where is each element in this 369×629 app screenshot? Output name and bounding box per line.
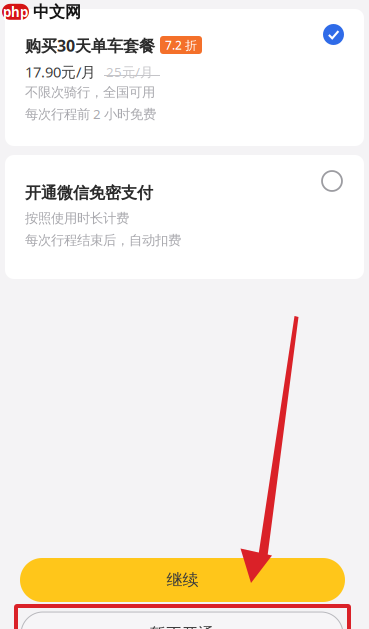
staticText: 继续 (166, 570, 198, 590)
staticText: 每次行程结束后，自动扣费 (25, 232, 181, 248)
staticText: 暂不开通 (150, 624, 214, 629)
staticText: 开通微信免密支付 (25, 183, 153, 203)
staticText: 17.90元/月 (25, 62, 96, 81)
staticText: 每次行程前 2 小时免费 (25, 105, 156, 123)
button[interactable]: 暂不开通 (21, 612, 343, 629)
staticText: 购买30天单车套餐 (25, 35, 155, 56)
button[interactable]: 继续 (20, 558, 345, 602)
staticText: 25元/月 (106, 63, 153, 81)
staticText: 按照使用时长计费 (25, 210, 129, 226)
button[interactable]: 购买30天单车套餐 (25, 35, 344, 139)
button[interactable]: 开通微信免密支付 (25, 183, 344, 265)
staticText: php (3, 3, 28, 21)
staticText: 不限次骑行，全国可用 (25, 84, 155, 100)
staticText: 中文网 (33, 2, 81, 22)
staticText: 7.2 折 (165, 37, 197, 53)
